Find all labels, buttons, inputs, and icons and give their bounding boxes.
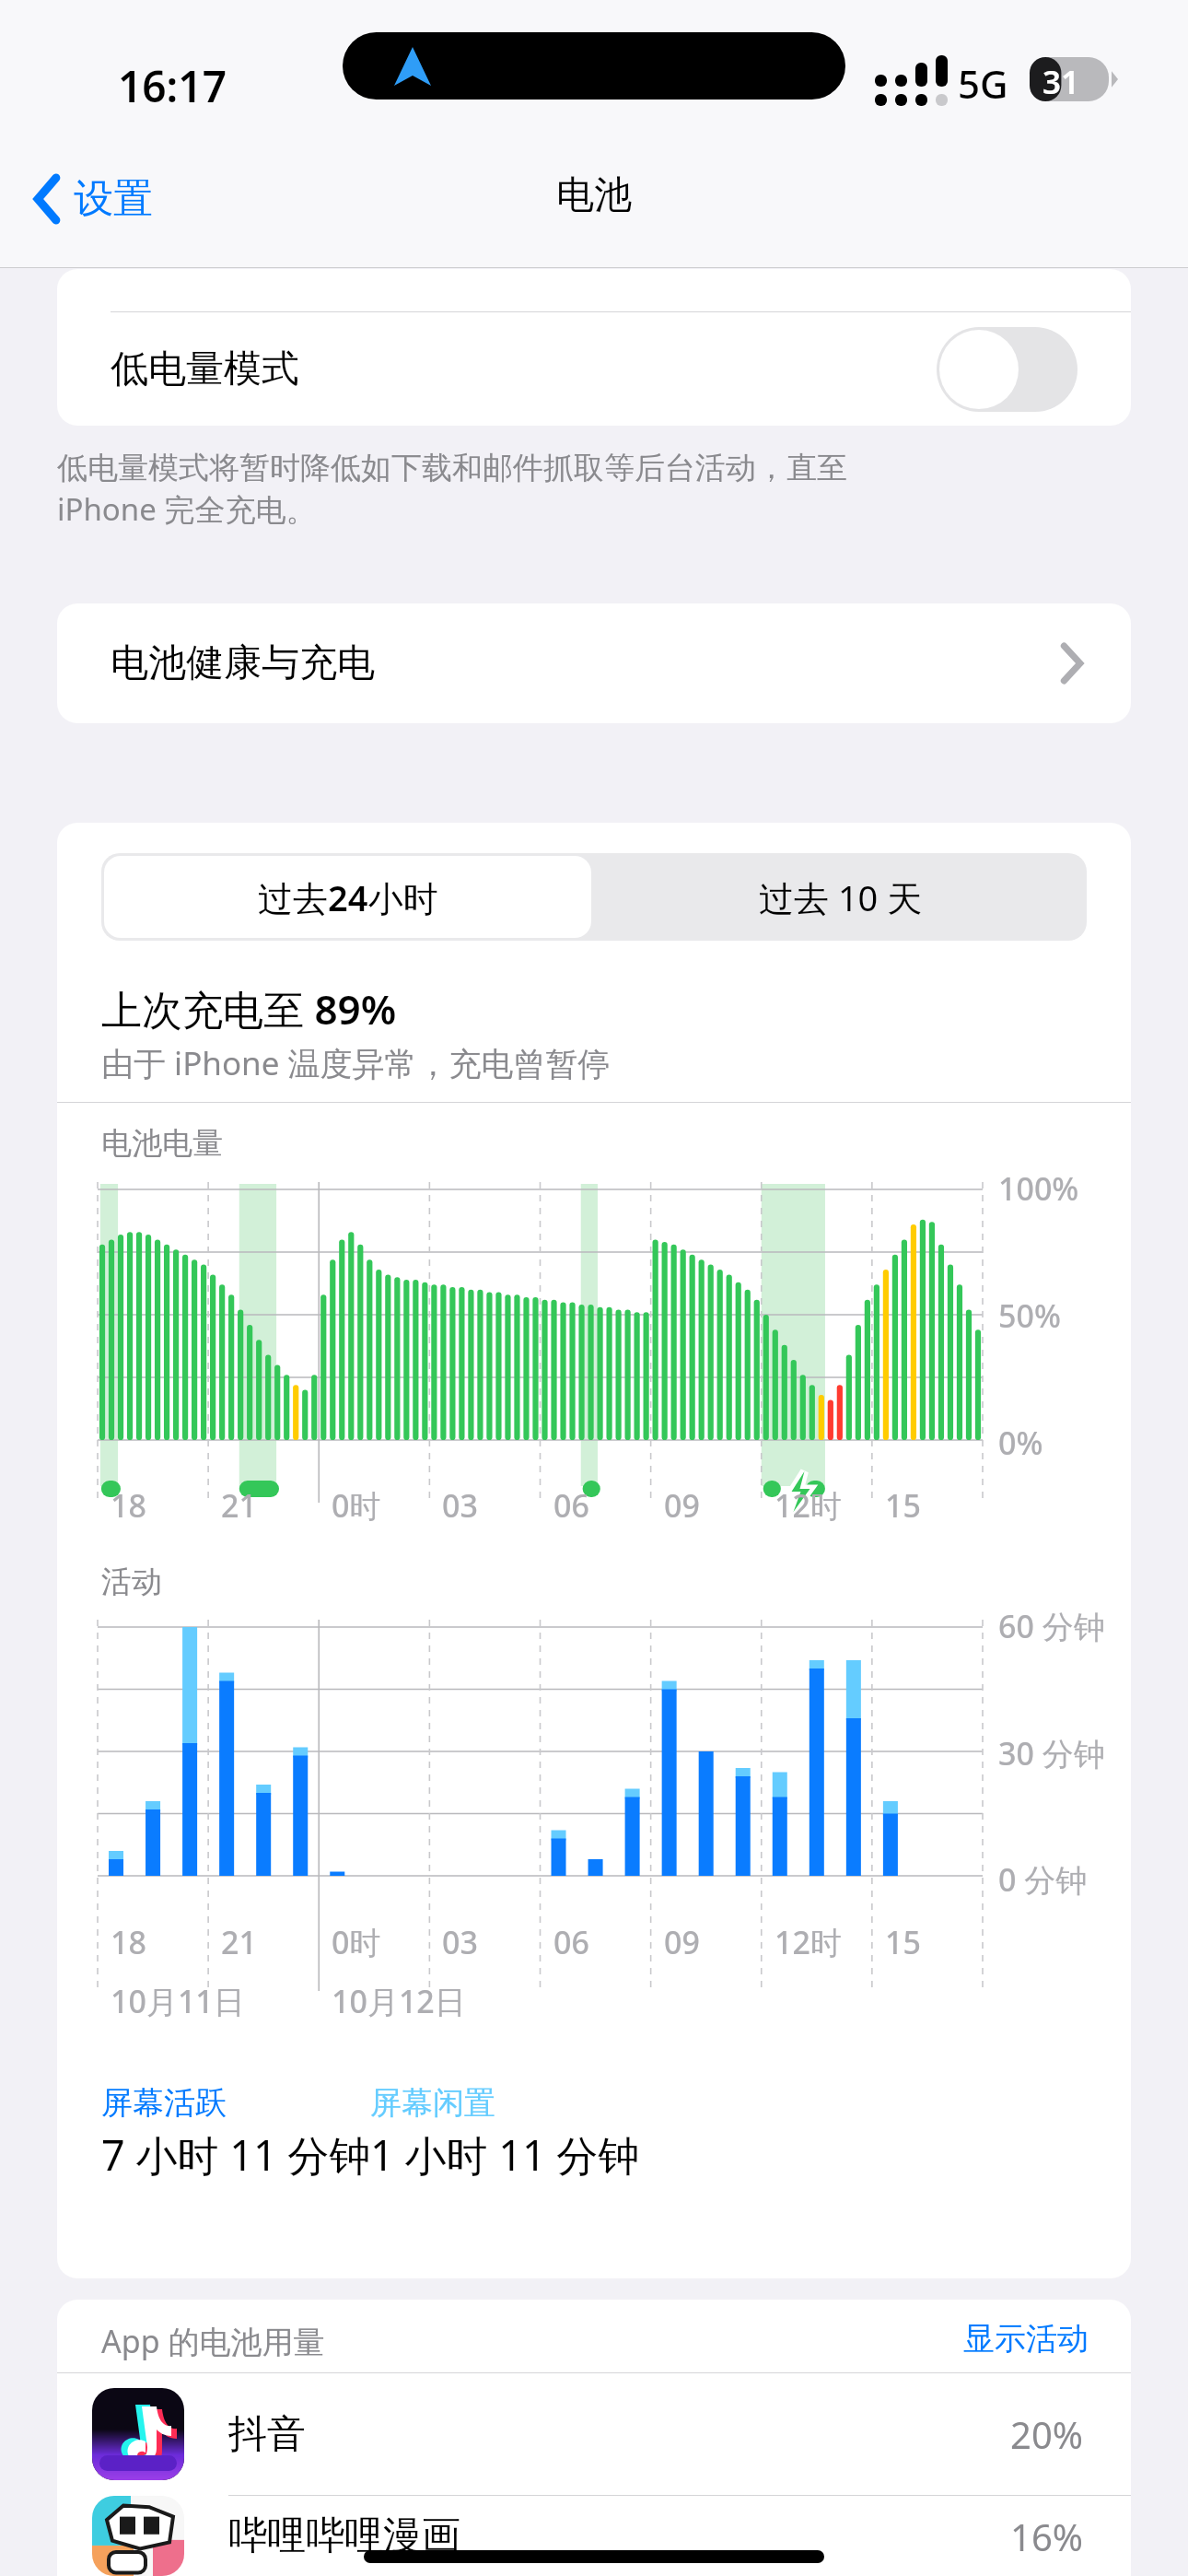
staticText: 09	[664, 1484, 700, 1527]
staticText: 抖音	[228, 2410, 306, 2459]
staticText: 16%	[1010, 2512, 1083, 2561]
staticText: 0时	[332, 1484, 381, 1527]
staticText: 电池电量	[101, 1124, 223, 1163]
staticText: 屏幕活跃	[101, 2083, 227, 2123]
staticText: 7 小时 11 分钟	[101, 2126, 371, 2183]
staticText: 屏幕闲置	[370, 2083, 495, 2123]
staticText: 0 分钟	[998, 1858, 1088, 1901]
staticText: App 的电池用量	[101, 2320, 325, 2362]
staticText: 12时	[775, 1921, 842, 1963]
staticText: 100%	[998, 1167, 1079, 1210]
staticText: 12时	[775, 1484, 842, 1527]
staticText: 电池	[0, 171, 1188, 219]
staticText: 20%	[1010, 2409, 1083, 2459]
staticText: 31	[1042, 60, 1080, 104]
staticText: 0%	[998, 1422, 1043, 1464]
staticText: 06	[553, 1484, 589, 1527]
staticText: 09	[664, 1921, 700, 1963]
staticText: 过去24小时	[258, 873, 438, 921]
staticText: 06	[553, 1921, 589, 1963]
staticText: 电池健康与充电	[111, 639, 375, 687]
staticText: 03	[442, 1484, 478, 1527]
staticText: 18	[111, 1921, 146, 1963]
button[interactable]: 哔哩哔哩漫画	[57, 2496, 1131, 2576]
staticText: 过去 10 天	[759, 873, 923, 921]
staticText: 0时	[332, 1921, 381, 1963]
staticText: 1 小时 11 分钟	[370, 2126, 640, 2183]
staticText: 哔哩哔哩漫画	[228, 2512, 460, 2560]
staticText: 03	[442, 1921, 478, 1963]
button[interactable]: 过去24小时	[101, 853, 594, 941]
staticText: 18	[111, 1484, 146, 1527]
staticText: 16:17	[118, 57, 227, 115]
button[interactable]: 电池健康与充电	[57, 603, 1131, 723]
staticText: 21	[221, 1484, 257, 1527]
button[interactable]: 抖音	[57, 2373, 1131, 2495]
staticText: 设置	[74, 174, 153, 224]
staticText: 10月12日	[332, 1980, 466, 2022]
button[interactable]: 设置	[24, 164, 153, 234]
staticText: 30 分钟	[998, 1732, 1105, 1774]
staticText: 由于 iPhone 温度异常，充电曾暂停	[101, 1041, 611, 1085]
staticText: 活动	[101, 1563, 162, 1601]
staticText: 低电量模式将暂时降低如下载和邮件抓取等后台活动，直至 iPhone 完全充电。	[57, 449, 1131, 529]
button[interactable]: 显示活动	[868, 2314, 1089, 2362]
staticText: 10月11日	[111, 1980, 245, 2022]
button[interactable]: 低电量模式	[57, 312, 1131, 426]
staticText: 60 分钟	[998, 1605, 1105, 1647]
staticText: 50%	[998, 1294, 1061, 1337]
button[interactable]: 过去 10 天	[594, 853, 1087, 941]
staticText: 21	[221, 1921, 257, 1963]
staticText: 5G	[958, 57, 1008, 110]
staticText: 15	[885, 1484, 921, 1527]
staticText: 上次充电至 89%	[101, 981, 397, 1036]
staticText: 15	[885, 1921, 921, 1963]
staticText: 显示活动	[963, 2319, 1089, 2359]
button[interactable]: 低电量模式开关	[937, 327, 1077, 412]
staticText: 低电量模式	[111, 345, 299, 393]
